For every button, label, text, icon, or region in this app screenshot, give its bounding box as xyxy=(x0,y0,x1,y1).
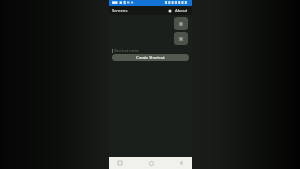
button[interactable]: Select secondary icon xyxy=(174,32,188,45)
staticText: Create Shortcut xyxy=(136,55,165,60)
button[interactable]: Recent apps xyxy=(115,158,125,168)
staticText: Shortcut name xyxy=(114,48,139,53)
button[interactable]: Back xyxy=(176,158,186,168)
button[interactable]: Create Shortcut xyxy=(112,54,189,61)
button[interactable]: Select icon xyxy=(174,17,188,30)
other: Theme toggle xyxy=(168,9,172,13)
button[interactable]: Shortcut name xyxy=(112,47,189,54)
button[interactable]: Home xyxy=(146,158,156,168)
staticText: Screens xyxy=(112,8,128,14)
staticText: About xyxy=(175,8,188,14)
button[interactable]: Theme toggle xyxy=(167,8,189,14)
